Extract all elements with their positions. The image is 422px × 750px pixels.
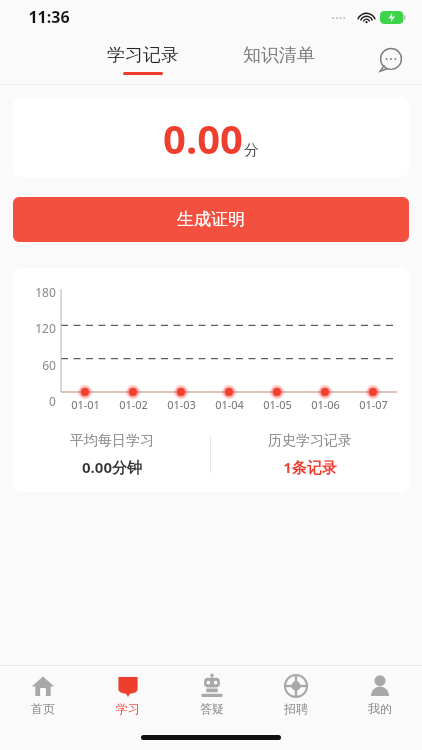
staticText: 历史学习记录 — [268, 432, 352, 450]
staticText: 01-02 — [119, 397, 148, 412]
staticText: 学习 — [116, 701, 140, 716]
staticText: 01-03 — [167, 397, 196, 412]
staticText: 01-04 — [215, 397, 244, 412]
staticText: 答疑 — [200, 701, 224, 716]
button[interactable]: 我的 — [338, 666, 422, 724]
staticText: 180 — [35, 284, 56, 300]
staticText: 招聘 — [284, 701, 308, 716]
button[interactable]: 知识清单 — [231, 40, 327, 71]
staticText: 我的 — [368, 701, 392, 716]
button[interactable]: 学习记录 — [95, 40, 191, 79]
button[interactable]: 生成证明 — [13, 197, 409, 242]
staticText: 60 — [42, 357, 56, 373]
button[interactable]: 历史学习记录 — [211, 432, 409, 477]
button[interactable]: 学习 — [85, 666, 170, 724]
staticText: 0.00分钟 — [82, 457, 142, 477]
staticText: 120 — [35, 320, 56, 336]
staticText: 0.00 — [163, 111, 243, 165]
staticText: 知识清单 — [243, 44, 315, 67]
button[interactable]: More options — [374, 43, 408, 77]
button[interactable]: 首页 — [0, 666, 85, 724]
staticText: 01-05 — [263, 397, 292, 412]
staticText: 01-01 — [71, 397, 100, 412]
staticText: 分 — [244, 141, 259, 160]
staticText: 01-06 — [311, 397, 340, 412]
staticText: 首页 — [31, 701, 55, 716]
staticText: 0 — [49, 393, 56, 409]
button[interactable]: 招聘 — [254, 666, 338, 724]
staticText: 01-07 — [359, 397, 388, 412]
staticText: 学习记录 — [107, 44, 179, 67]
staticText: 生成证明 — [177, 209, 245, 230]
button[interactable]: 答疑 — [170, 666, 254, 724]
staticText: 平均每日学习 — [70, 432, 154, 450]
button[interactable]: 0.00 — [13, 98, 409, 177]
button[interactable]: 平均每日学习 — [13, 432, 210, 477]
staticText: 1条记录 — [283, 457, 337, 477]
staticText: 11:36 — [28, 6, 70, 28]
